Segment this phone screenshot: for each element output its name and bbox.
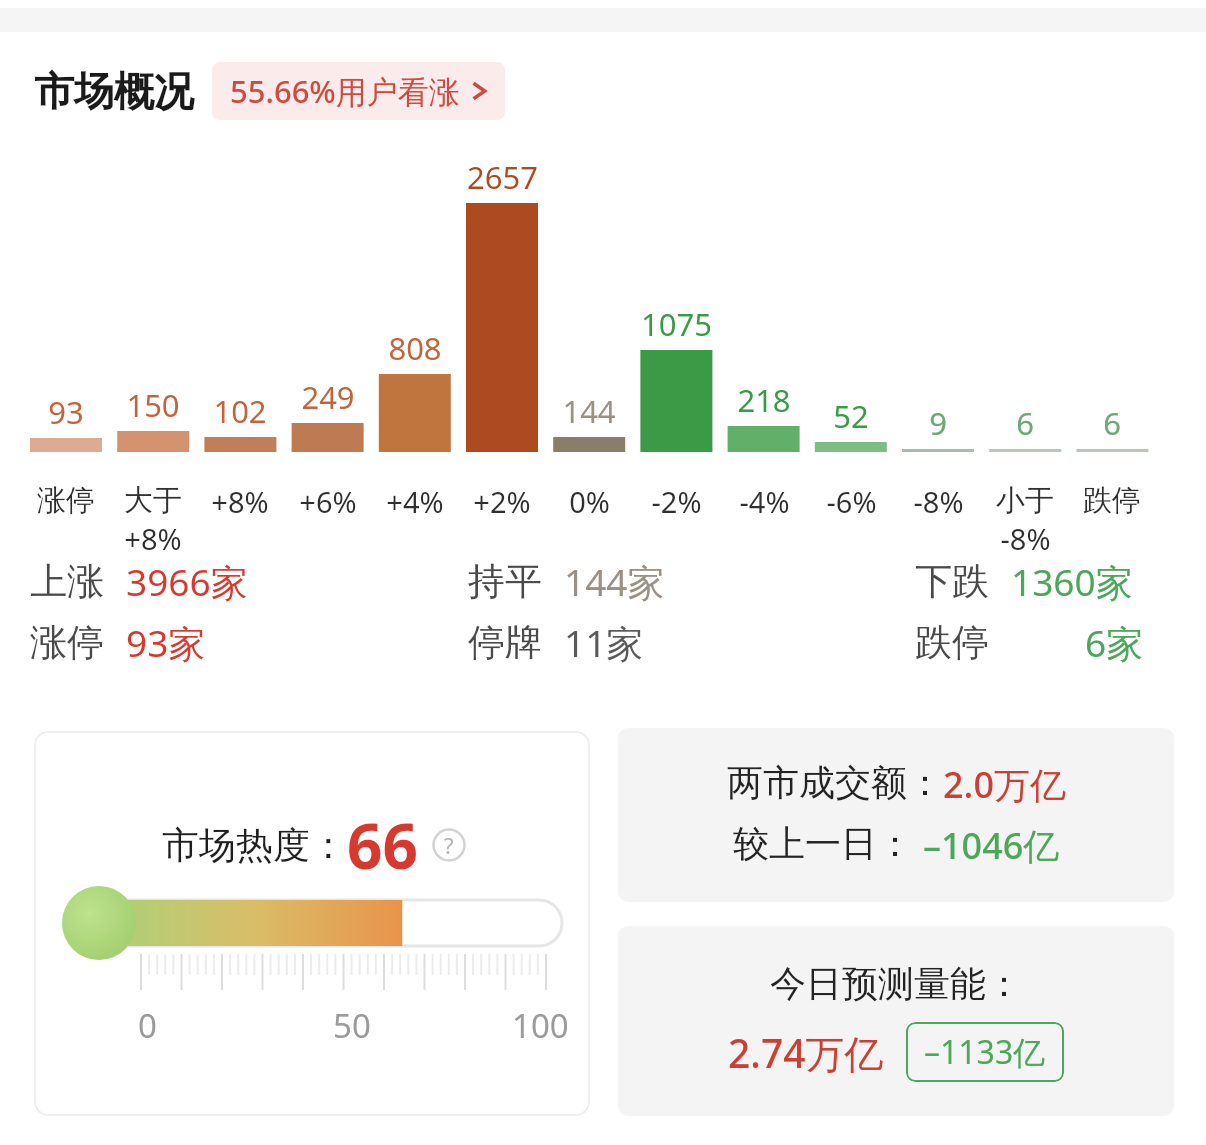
staticText: 144家: [564, 556, 665, 607]
staticText: -6%: [826, 482, 877, 521]
other: 查看详情: [472, 78, 487, 104]
staticText: 两市成交额：: [727, 760, 943, 805]
staticText: 0%: [569, 482, 610, 521]
staticText: 持平: [468, 558, 542, 605]
staticText: 808: [388, 327, 442, 369]
staticText: 大于: [124, 482, 182, 519]
staticText: –1133亿: [924, 1030, 1046, 1074]
staticText: +2%: [473, 482, 531, 521]
staticText: 144: [562, 390, 616, 432]
button[interactable]: 持平: [468, 556, 665, 607]
staticText: 跌停: [915, 619, 989, 666]
staticText: 今日预测量能：: [770, 961, 1022, 1006]
button[interactable]: 说明: [432, 828, 466, 862]
button[interactable]: 55.66%用户看涨: [212, 62, 505, 120]
staticText: 1075: [641, 303, 712, 345]
staticText: 102: [213, 390, 267, 432]
button[interactable]: 跌停: [915, 617, 1144, 668]
staticText: 较上一日：: [733, 821, 913, 866]
staticText: 9: [929, 402, 947, 444]
button[interactable]: 下跌: [915, 556, 1133, 607]
staticText: 市场概况: [34, 66, 194, 116]
button[interactable]: 停牌: [468, 617, 644, 668]
staticText: +4%: [386, 482, 444, 521]
staticText: 2.74万亿: [728, 1026, 884, 1079]
staticText: 市场热度：: [162, 822, 347, 869]
staticText: 小于: [996, 482, 1054, 519]
staticText: +8%: [211, 482, 269, 521]
staticText: 93: [48, 391, 84, 433]
staticText: 218: [737, 379, 791, 421]
staticText: 2657: [467, 156, 538, 198]
staticText: 55.66%用户看涨: [230, 70, 460, 112]
staticText: 涨停: [37, 482, 95, 519]
staticText: 6家: [1085, 617, 1144, 668]
staticText: -8%: [913, 482, 964, 521]
button[interactable]: 市场热度：: [34, 731, 590, 1116]
button[interactable]: 两市成交额：: [618, 728, 1174, 902]
staticText: ?: [444, 830, 454, 860]
staticText: 1360家: [1011, 556, 1133, 607]
staticText: 下跌: [915, 558, 989, 605]
staticText: 2.0万亿: [943, 760, 1066, 809]
staticText: 100: [512, 1003, 569, 1048]
staticText: 6: [1016, 402, 1034, 444]
staticText: +8%: [124, 519, 182, 558]
staticText: -8%: [1000, 519, 1051, 558]
staticText: 0: [138, 1003, 157, 1048]
staticText: 150: [126, 384, 180, 426]
staticText: 249: [301, 376, 355, 418]
button[interactable]: 今日预测量能：: [618, 926, 1174, 1116]
staticText: 50: [333, 1003, 371, 1048]
button[interactable]: 涨停: [30, 617, 206, 668]
staticText: -4%: [739, 482, 790, 521]
button[interactable]: 上涨: [30, 556, 248, 607]
staticText: 11家: [564, 617, 644, 668]
staticText: 停牌: [468, 619, 542, 666]
staticText: 52: [833, 395, 869, 437]
staticText: 跌停: [1083, 482, 1141, 519]
staticText: 6: [1103, 402, 1121, 444]
staticText: –1046亿: [923, 821, 1060, 870]
staticText: 3966家: [126, 556, 248, 607]
staticText: 93家: [126, 617, 206, 668]
staticText: 66: [347, 803, 418, 887]
staticText: 上涨: [30, 558, 104, 605]
staticText: 涨停: [30, 619, 104, 666]
staticText: -2%: [651, 482, 702, 521]
staticText: +6%: [299, 482, 357, 521]
